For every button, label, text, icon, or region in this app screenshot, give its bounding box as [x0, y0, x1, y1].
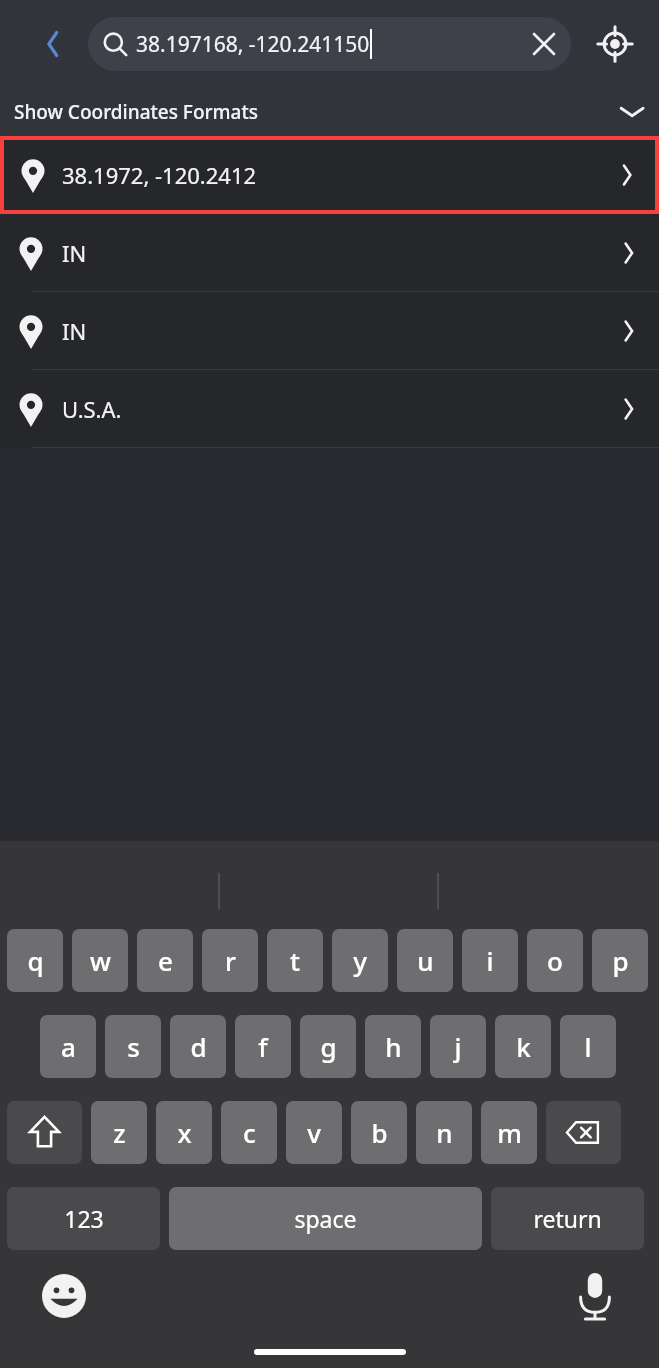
- button[interactable]: n: [416, 1101, 472, 1164]
- button[interactable]: z: [91, 1101, 147, 1164]
- button[interactable]: v: [286, 1101, 342, 1164]
- staticText: 123: [64, 1203, 104, 1234]
- staticText: 38.1972, -120.2412: [62, 160, 607, 190]
- staticText: n: [436, 1115, 453, 1150]
- staticText: t: [290, 943, 300, 978]
- staticText: y: [353, 943, 367, 978]
- staticText: IN: [62, 316, 607, 346]
- button[interactable]: s: [105, 1015, 161, 1078]
- staticText: u: [417, 943, 434, 978]
- staticText: f: [258, 1029, 268, 1064]
- staticText: 38.197168, -120.241150: [136, 30, 370, 59]
- button[interactable]: Dictation: [569, 1270, 621, 1322]
- button[interactable]: IN: [0, 214, 659, 292]
- button[interactable]: 123: [7, 1187, 160, 1250]
- button[interactable]: x: [156, 1101, 212, 1164]
- button[interactable]: Clear text: [517, 17, 571, 71]
- staticText: i: [486, 943, 494, 978]
- staticText: v: [307, 1115, 321, 1150]
- staticText: e: [158, 943, 173, 978]
- staticText: p: [612, 943, 629, 978]
- button[interactable]: U.S.A.: [0, 370, 659, 448]
- staticText: d: [190, 1029, 207, 1064]
- button[interactable]: return: [491, 1187, 644, 1250]
- button[interactable]: Shift: [7, 1101, 82, 1164]
- staticText: r: [225, 943, 236, 978]
- button[interactable]: Back: [0, 0, 88, 88]
- staticText: k: [516, 1029, 531, 1064]
- button[interactable]: q: [7, 929, 63, 992]
- staticText: U.S.A.: [62, 394, 607, 424]
- button[interactable]: t: [267, 929, 323, 992]
- staticText: z: [113, 1115, 126, 1150]
- staticText: s: [127, 1029, 140, 1064]
- staticText: IN: [62, 238, 607, 268]
- staticText: w: [90, 943, 111, 978]
- staticText: a: [61, 1029, 76, 1064]
- staticText: return: [533, 1203, 602, 1234]
- staticText: x: [177, 1115, 192, 1150]
- button[interactable]: b: [351, 1101, 407, 1164]
- button[interactable]: g: [300, 1015, 356, 1078]
- staticText: g: [320, 1029, 337, 1064]
- button[interactable]: a: [40, 1015, 96, 1078]
- button[interactable]: m: [481, 1101, 537, 1164]
- button[interactable]: Emoji keyboard: [38, 1270, 90, 1322]
- button[interactable]: Show Coordinates Formats: [0, 88, 659, 136]
- staticText: space: [294, 1203, 357, 1234]
- button[interactable]: k: [495, 1015, 551, 1078]
- staticText: q: [27, 943, 44, 978]
- button[interactable]: r: [202, 929, 258, 992]
- button[interactable]: IN: [0, 292, 659, 370]
- staticText: m: [497, 1115, 522, 1150]
- button[interactable]: d: [170, 1015, 226, 1078]
- staticText: l: [584, 1029, 592, 1064]
- button[interactable]: h: [365, 1015, 421, 1078]
- staticText: h: [385, 1029, 402, 1064]
- button[interactable]: i: [462, 929, 518, 992]
- staticText: Show Coordinates Formats: [14, 99, 258, 125]
- button[interactable]: y: [332, 929, 388, 992]
- button[interactable]: 38.1972, -120.2412: [4, 140, 655, 210]
- button[interactable]: o: [527, 929, 583, 992]
- button[interactable]: space: [169, 1187, 482, 1250]
- button[interactable]: 38.197168, -120.241150: [88, 17, 571, 71]
- button[interactable]: My location: [571, 0, 659, 88]
- button[interactable]: c: [221, 1101, 277, 1164]
- staticText: c: [243, 1115, 256, 1150]
- button[interactable]: p: [592, 929, 648, 992]
- button[interactable]: Backspace: [546, 1101, 621, 1164]
- staticText: o: [547, 943, 563, 978]
- button[interactable]: f: [235, 1015, 291, 1078]
- button[interactable]: w: [72, 929, 128, 992]
- button[interactable]: u: [397, 929, 453, 992]
- button[interactable]: l: [560, 1015, 616, 1078]
- button[interactable]: e: [137, 929, 193, 992]
- button[interactable]: j: [430, 1015, 486, 1078]
- staticText: b: [371, 1115, 388, 1150]
- staticText: j: [454, 1029, 462, 1064]
